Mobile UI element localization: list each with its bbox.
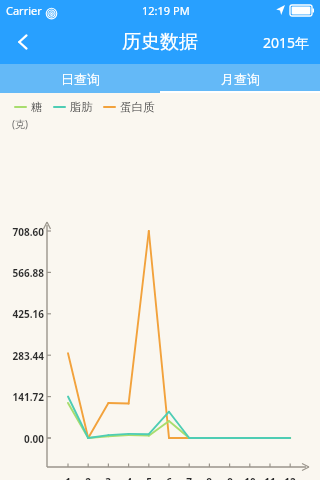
staticText: 11 xyxy=(264,475,276,480)
button[interactable]: 月查询 xyxy=(160,64,320,93)
staticText: 日查询 xyxy=(61,71,100,87)
staticText: 脂肪 xyxy=(70,100,93,114)
button[interactable]: Back xyxy=(0,20,46,64)
button[interactable]: 2015年 xyxy=(263,33,310,52)
staticText: 12 xyxy=(284,475,296,480)
staticText: 2 xyxy=(85,475,91,480)
staticText: 0.00 xyxy=(24,432,44,446)
staticText: 425.16 xyxy=(12,307,44,321)
staticText: 6 xyxy=(166,475,172,480)
staticText: 糖 xyxy=(31,100,43,114)
staticText: 1 xyxy=(65,475,71,480)
staticText: 10 xyxy=(244,475,256,480)
staticText: 2015年 xyxy=(263,33,310,52)
staticText: 8 xyxy=(206,475,212,480)
staticText: 9 xyxy=(227,475,233,480)
staticText: 708.60 xyxy=(12,225,44,239)
staticText: 蛋白质 xyxy=(120,100,155,114)
staticText: 5 xyxy=(146,475,152,480)
staticText: 12:19 PM xyxy=(142,3,190,18)
staticText: 历史数据 xyxy=(122,30,198,54)
staticText: 7 xyxy=(186,475,192,480)
staticText: 283.44 xyxy=(12,349,44,363)
staticText: 141.72 xyxy=(12,390,44,404)
staticText: (克) xyxy=(12,117,28,131)
staticText: 566.88 xyxy=(12,266,44,280)
staticText: Carrier xyxy=(6,3,42,18)
staticText: 3 xyxy=(105,475,111,480)
staticText: 4 xyxy=(126,475,132,480)
button[interactable]: 日查询 xyxy=(0,64,160,93)
staticText: 月查询 xyxy=(221,71,260,87)
